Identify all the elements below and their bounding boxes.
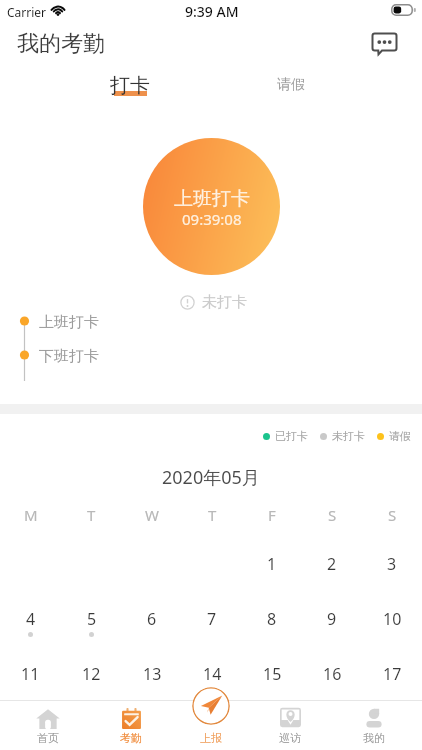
button[interactable]: 7 [182,586,242,641]
staticText: 未打卡 [202,293,247,312]
staticText: 17 [383,663,402,685]
button[interactable]: 已打卡 [263,429,308,443]
button[interactable]: 2 [302,531,362,586]
button[interactable]: 12 [61,641,122,696]
staticText: 3 [387,553,397,575]
staticText: 9 [327,608,337,630]
button[interactable]: 上报 [169,700,253,750]
staticText: 14 [203,663,222,685]
button[interactable]: 请假 [266,66,316,104]
button[interactable]: 未打卡 [180,293,247,312]
staticText: 已打卡 [275,429,308,443]
staticText: 09:39:08 [182,209,242,229]
staticText: T [87,505,96,525]
button[interactable]: 我的 [332,700,416,750]
button[interactable]: 17 [362,641,422,696]
button[interactable]: 未打卡 [320,429,365,443]
staticText: 上报 [200,731,222,745]
staticText: S [388,505,397,525]
staticText: 15 [263,663,282,685]
button[interactable]: 3 [362,531,422,586]
staticText: 13 [143,663,162,685]
button[interactable]: 13 [122,641,182,696]
staticText: Carrier [7,4,47,20]
button[interactable]: 上班打卡 [143,138,280,275]
button[interactable]: 上报 [192,687,230,725]
staticText: F [268,505,276,525]
staticText: 考勤 [120,731,142,745]
staticText: S [328,505,337,525]
staticText: 6 [147,608,157,630]
button[interactable]: Messages [362,22,406,66]
staticText: 首页 [37,731,59,745]
staticText: 巡访 [279,731,301,745]
staticText: 上班打卡 [174,187,250,211]
button[interactable]: 10 [362,586,422,641]
button[interactable]: 16 [302,641,362,696]
staticText: 2020年05月 [162,465,260,490]
button[interactable]: 首页 [6,700,90,750]
staticText: 我的考勤 [17,30,105,58]
staticText: 8 [267,608,277,630]
button[interactable]: 考勤 [89,700,173,750]
staticText: 请假 [389,429,411,443]
staticText: 我的 [363,731,385,745]
button[interactable]: 15 [242,641,302,696]
staticText: 未打卡 [332,429,365,443]
button[interactable]: 14 [182,641,242,696]
button[interactable]: 11 [0,641,61,696]
staticText: 16 [323,663,342,685]
staticText: 2 [327,553,337,575]
button[interactable]: 打卡 [105,66,155,104]
button[interactable]: 5 [61,586,122,641]
staticText: 9:39 AM [185,2,239,21]
staticText: 4 [26,608,36,630]
button[interactable]: 请假 [377,429,411,443]
button[interactable]: 8 [242,586,302,641]
button[interactable]: 巡访 [248,700,332,750]
staticText: 打卡 [110,73,150,98]
staticText: 12 [82,663,101,685]
staticText: 10 [383,608,402,630]
staticText: W [145,505,159,525]
staticText: M [24,505,38,525]
staticText: 上班打卡 [39,313,99,332]
button[interactable]: 1 [242,531,302,586]
staticText: 1 [267,553,277,575]
staticText: 11 [21,663,40,685]
staticText: 5 [87,608,97,630]
staticText: T [208,505,217,525]
button[interactable]: 9 [302,586,362,641]
staticText: 下班打卡 [39,347,99,366]
staticText: 7 [207,608,217,630]
button[interactable]: 4 [0,586,61,641]
staticText: 请假 [277,76,305,94]
button[interactable]: 6 [122,586,182,641]
